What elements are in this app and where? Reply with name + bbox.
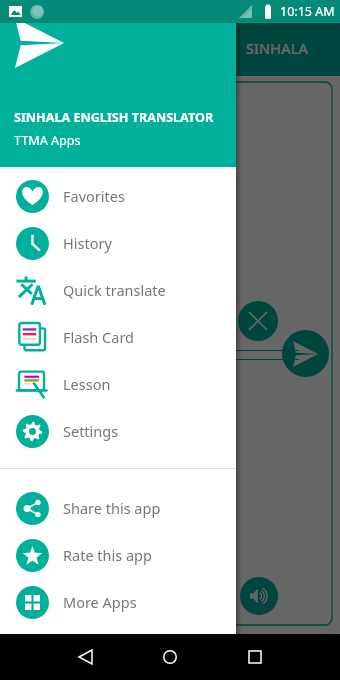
staticText: Lesson xyxy=(63,374,111,394)
staticText: History xyxy=(63,233,112,253)
button[interactable]: Home xyxy=(148,635,192,679)
staticText: More Apps xyxy=(63,592,137,612)
staticText: Rate this app xyxy=(63,545,152,565)
button[interactable]: History xyxy=(0,220,236,267)
button[interactable]: Recents xyxy=(233,635,277,679)
button[interactable]: Favorites xyxy=(0,173,236,220)
staticText: Settings xyxy=(63,421,119,441)
button[interactable]: Translate xyxy=(282,330,329,377)
button[interactable]: Rate this app xyxy=(0,532,236,579)
staticText: 10:15 AM xyxy=(280,3,335,20)
staticText: Favorites xyxy=(63,186,125,206)
staticText: Share this app xyxy=(63,498,161,518)
button[interactable]: Speak xyxy=(240,577,278,615)
staticText: Flash Card xyxy=(63,327,134,347)
button[interactable]: Lesson xyxy=(0,361,236,408)
button[interactable]: More Apps xyxy=(0,579,236,626)
button[interactable]: Back xyxy=(63,635,107,679)
button[interactable]: Settings xyxy=(0,408,236,455)
staticText: Quick translate xyxy=(63,280,166,300)
staticText: SINHALA xyxy=(246,38,308,58)
button[interactable]: Clear text xyxy=(238,301,278,341)
button[interactable]: Quick translate xyxy=(0,267,236,314)
staticText: SINHALA ENGLISH TRANSLATOR xyxy=(14,109,214,126)
button[interactable]: Share this app xyxy=(0,485,236,532)
button[interactable]: Flash Card xyxy=(0,314,236,361)
staticText: TTMA Apps xyxy=(14,132,81,149)
